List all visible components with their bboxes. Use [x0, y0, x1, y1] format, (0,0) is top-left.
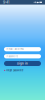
button[interactable]: Password — [4, 54, 41, 58]
staticText: Password — [6, 55, 18, 58]
staticText: Forgot password? — [6, 69, 23, 72]
staticText: Sign in — [17, 62, 28, 65]
staticText: 9:41 — [3, 0, 9, 4]
button[interactable]: Forgot password? — [4, 69, 41, 72]
staticText: Email address — [6, 48, 23, 51]
button[interactable]: Email address — [4, 47, 41, 51]
button[interactable]: Sign in — [4, 61, 41, 66]
